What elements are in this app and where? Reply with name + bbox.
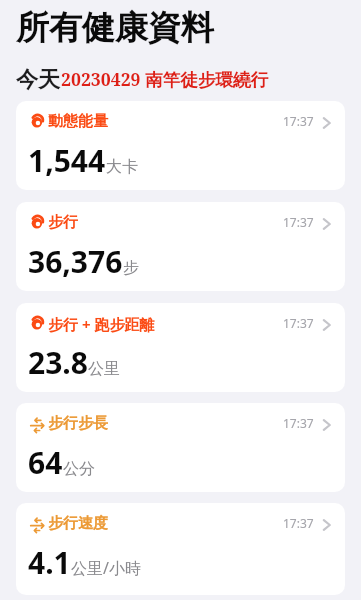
button[interactable]: 動態能量 [16,101,345,190]
staticText: 17:37 [283,515,314,531]
staticText: 17:37 [283,415,314,431]
staticText: 公分 [63,459,95,479]
staticText: 動態能量 [48,112,108,131]
staticText: 大卡 [106,157,138,177]
staticText: 36,376 [28,241,123,282]
staticText: 所有健康資料 [16,7,214,49]
button[interactable]: 20230429 南竿徒步環繞行 [61,67,269,91]
staticText: 公里/小時 [71,557,141,579]
staticText: 17:37 [283,214,314,230]
button[interactable]: 步行 + 跑步距離 [16,303,345,392]
button[interactable]: 步行速度 [16,503,345,595]
staticText: 步行 + 跑步距離 [48,314,155,334]
staticText: 步行速度 [48,514,108,533]
staticText: 17:37 [283,113,314,129]
staticText: 17:37 [283,315,314,331]
button[interactable]: 步行步長 [16,403,345,492]
staticText: 今天 [16,66,60,94]
button[interactable]: 步行 [16,202,345,291]
staticText: 步 [123,258,139,278]
staticText: 23.8 [28,342,88,383]
staticText: 公里 [88,359,120,379]
staticText: 1,544 [28,140,106,181]
staticText: 步行 [48,213,78,232]
staticText: 4.1 [28,542,71,583]
staticText: 64 [28,442,63,483]
staticText: 步行步長 [48,414,108,433]
